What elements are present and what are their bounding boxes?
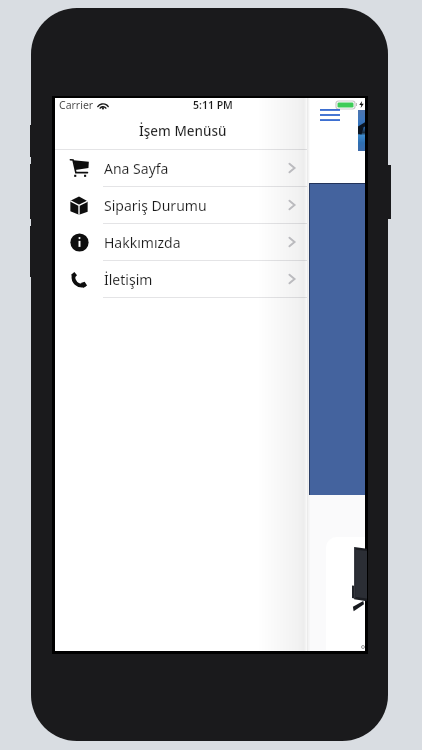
staticText: Hakkımızda bbox=[104, 233, 181, 252]
button[interactable]: Ana Sayfa bbox=[55, 150, 307, 187]
staticText: 5:11 PM bbox=[193, 98, 233, 112]
staticText: Ana Sayfa bbox=[104, 159, 169, 178]
staticText: İletişim bbox=[104, 270, 153, 289]
staticText: İşem Menüsü bbox=[139, 122, 227, 140]
staticText: Carrier bbox=[59, 98, 94, 112]
button[interactable]: Hakkımızda bbox=[55, 224, 307, 261]
button[interactable]: İletişim bbox=[55, 261, 307, 298]
button[interactable]: Menu bbox=[320, 109, 340, 121]
staticText: Sipariş Durumu bbox=[104, 196, 207, 215]
button[interactable]: Sipariş Durumu bbox=[55, 187, 307, 224]
